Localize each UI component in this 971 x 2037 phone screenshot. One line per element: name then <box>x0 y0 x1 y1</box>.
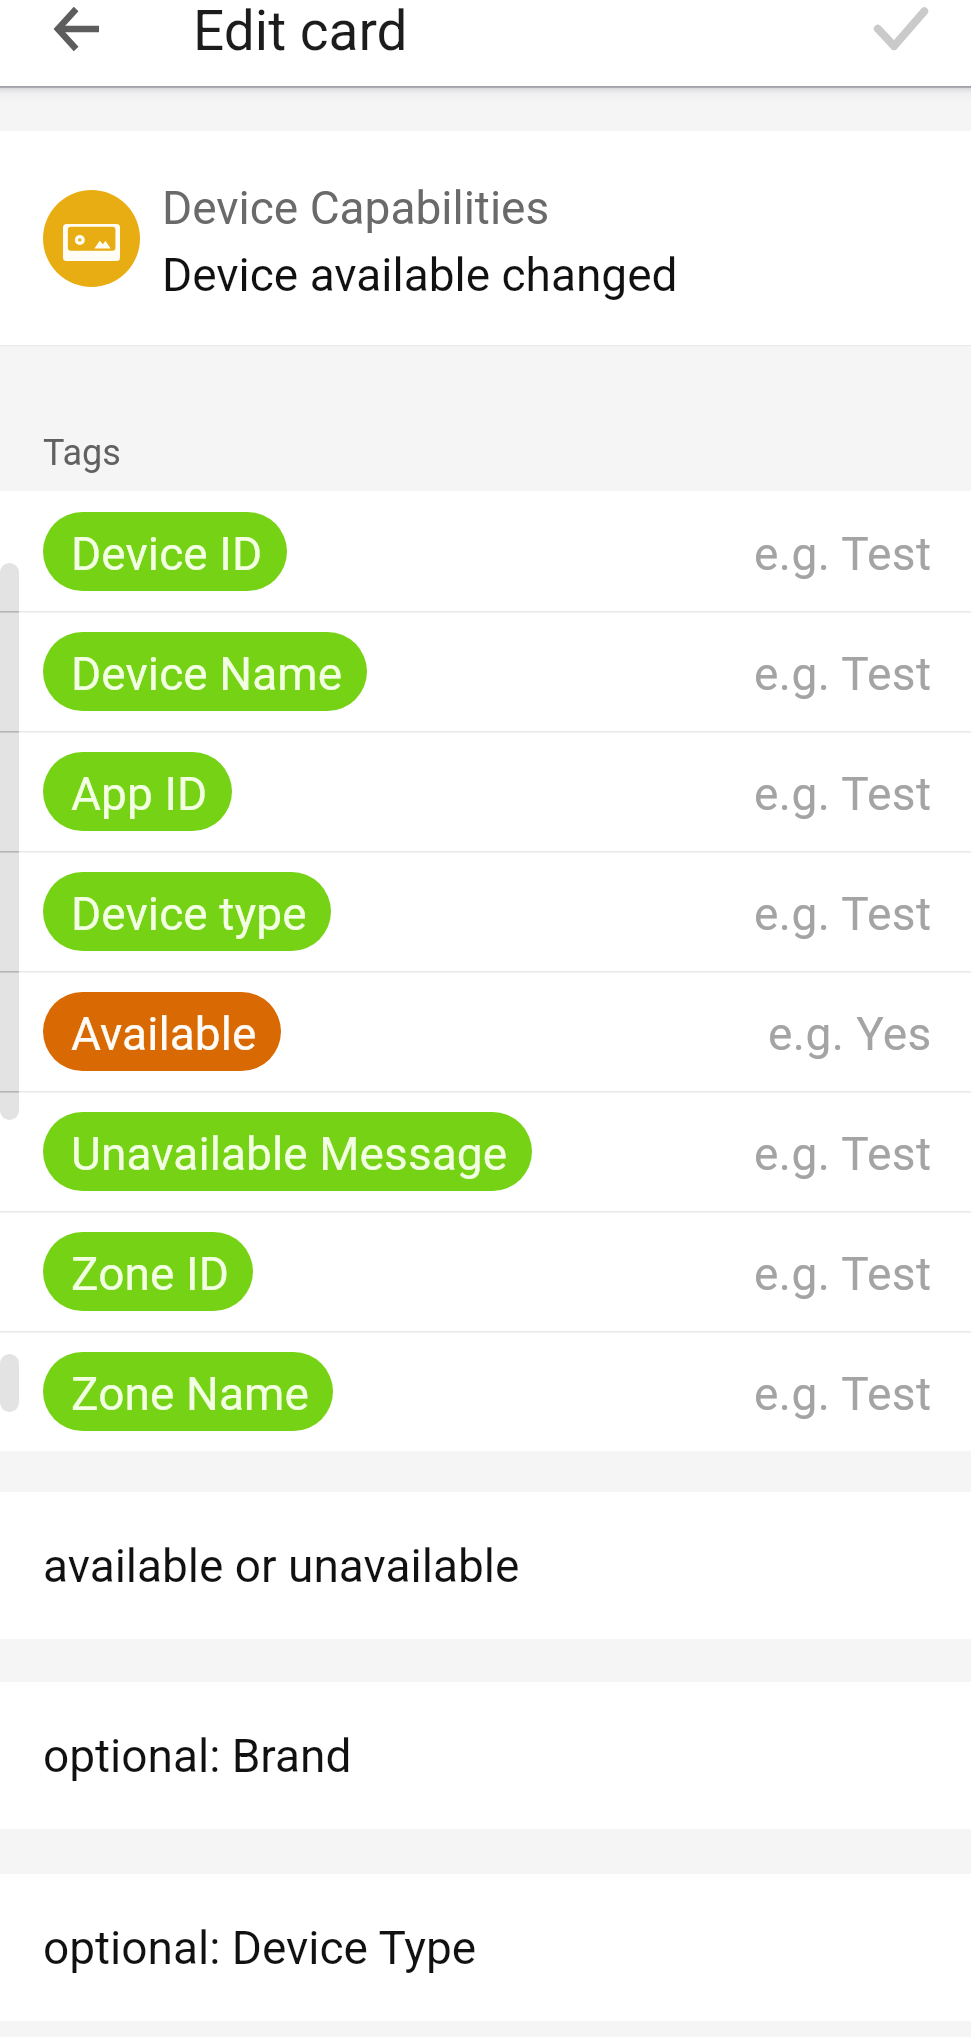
button[interactable]: available or unavailable <box>0 1492 971 1639</box>
staticText: Device Name <box>71 647 343 701</box>
button[interactable]: Zone ID <box>0 1211 971 1331</box>
staticText: e.g. Test <box>754 1127 932 1181</box>
button[interactable]: optional: Device Type <box>0 1874 971 2021</box>
button[interactable]: Unavailable Message <box>43 1112 532 1191</box>
staticText: Zone ID <box>71 1247 229 1301</box>
staticText: Available <box>71 1007 257 1061</box>
staticText: Unavailable Message <box>71 1127 508 1181</box>
staticText: e.g. Test <box>754 1247 932 1301</box>
button[interactable]: optional: Brand <box>0 1682 971 1829</box>
button[interactable]: App ID <box>0 731 971 851</box>
staticText: Device type <box>71 887 307 941</box>
button[interactable]: Zone Name <box>0 1331 971 1451</box>
staticText: Device available changed <box>162 248 678 302</box>
staticText: e.g. Test <box>754 527 932 581</box>
button[interactable]: App ID <box>43 752 232 831</box>
button[interactable]: Back <box>43 0 111 63</box>
button[interactable]: Device ID <box>43 512 287 591</box>
staticText: Tags <box>43 432 121 474</box>
staticText: optional: Device Type <box>43 1921 477 1975</box>
button[interactable]: Unavailable Message <box>0 1091 971 1211</box>
staticText: Zone Name <box>71 1367 309 1421</box>
staticText: available or unavailable <box>43 1539 520 1593</box>
button[interactable]: Device ID <box>0 491 971 611</box>
button[interactable]: Zone ID <box>43 1232 253 1311</box>
button[interactable]: Device type <box>0 851 971 971</box>
staticText: e.g. Test <box>754 887 932 941</box>
button[interactable]: Device type <box>43 872 331 951</box>
staticText: Device ID <box>71 527 263 581</box>
staticText: e.g. Test <box>754 647 932 701</box>
staticText: Edit card <box>193 0 408 63</box>
button[interactable]: Device Name <box>43 632 367 711</box>
staticText: e.g. Test <box>754 767 932 821</box>
button[interactable]: Save <box>865 0 937 67</box>
staticText: optional: Brand <box>43 1729 352 1783</box>
button[interactable]: Zone Name <box>43 1352 333 1431</box>
staticText: Device Capabilities <box>162 181 550 235</box>
staticText: App ID <box>71 767 208 821</box>
staticText: e.g. Test <box>754 1367 932 1421</box>
button[interactable]: Device Capabilities <box>0 131 971 345</box>
button[interactable]: Available <box>0 971 971 1091</box>
button[interactable]: Available <box>43 992 281 1071</box>
staticText: e.g. Yes <box>768 1007 932 1061</box>
button[interactable]: Device Name <box>0 611 971 731</box>
